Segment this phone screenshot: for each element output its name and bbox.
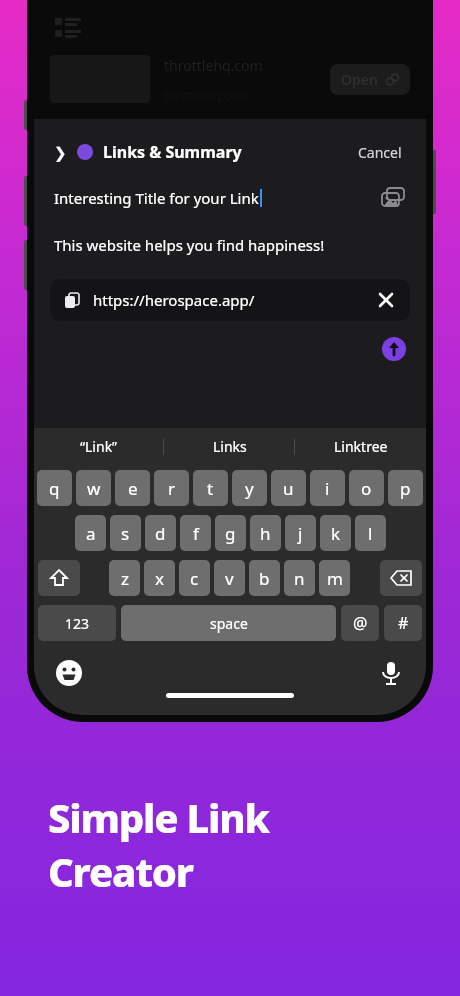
staticText: r: [168, 477, 176, 500]
staticText: m: [327, 567, 343, 590]
staticText: z: [121, 567, 129, 590]
button[interactable]: “Link”: [34, 428, 164, 465]
button[interactable]: q: [37, 470, 72, 506]
staticText: w: [87, 477, 101, 500]
staticText: Interesting Title for your Link: [54, 188, 259, 208]
staticText: l: [368, 522, 373, 545]
button[interactable]: 123: [38, 605, 116, 641]
button[interactable]: Voice input: [378, 660, 404, 686]
staticText: Linktree: [334, 437, 388, 456]
button[interactable]: #: [384, 605, 422, 641]
button[interactable]: c: [179, 560, 210, 596]
staticText: g: [225, 522, 236, 545]
staticText: ❯: [54, 144, 67, 161]
button[interactable]: k: [320, 515, 351, 551]
staticText: o: [361, 477, 372, 500]
staticText: u: [283, 477, 294, 500]
staticText: n: [294, 567, 305, 590]
button[interactable]: f: [180, 515, 211, 551]
staticText: Creator: [48, 844, 193, 898]
button[interactable]: Add image: [380, 185, 406, 211]
staticText: t: [207, 477, 214, 500]
button[interactable]: r: [154, 470, 189, 506]
button[interactable]: t: [193, 470, 228, 506]
button[interactable]: Backspace: [380, 560, 422, 596]
button[interactable]: Clear: [376, 290, 396, 310]
button[interactable]: x: [144, 560, 175, 596]
button[interactable]: j: [285, 515, 316, 551]
button[interactable]: m: [319, 560, 350, 596]
staticText: v: [225, 567, 234, 590]
button[interactable]: w: [76, 470, 111, 506]
staticText: space: [210, 614, 248, 633]
button[interactable]: z: [109, 560, 140, 596]
staticText: https://herospace.app/: [93, 290, 255, 310]
staticText: y: [245, 477, 254, 500]
staticText: @: [353, 612, 368, 634]
staticText: d: [155, 522, 166, 545]
button[interactable]: v: [214, 560, 245, 596]
button[interactable]: h: [250, 515, 281, 551]
staticText: f: [193, 522, 199, 545]
button[interactable]: Emoji: [56, 660, 82, 686]
staticText: throttlehq.com: [164, 56, 263, 75]
button[interactable]: b: [249, 560, 280, 596]
button[interactable]: s: [110, 515, 141, 551]
button[interactable]: Linktree: [295, 428, 426, 465]
button[interactable]: Open: [330, 64, 410, 95]
staticText: a: [86, 522, 96, 545]
button[interactable]: o: [349, 470, 384, 506]
staticText: Open: [341, 70, 378, 89]
staticText: b: [259, 567, 270, 590]
staticText: Simple Link: [48, 790, 269, 844]
button[interactable]: Send: [382, 337, 406, 361]
button[interactable]: y: [232, 470, 267, 506]
staticText: Links & Summary: [103, 141, 242, 163]
button[interactable]: e: [115, 470, 150, 506]
staticText: x: [155, 567, 164, 590]
staticText: Links: [213, 437, 247, 456]
button[interactable]: Menu: [54, 13, 80, 39]
button[interactable]: a: [75, 515, 106, 551]
staticText: p: [400, 477, 411, 500]
staticText: This website helps you find happiness!: [54, 235, 325, 255]
staticText: “Link”: [80, 437, 118, 456]
button[interactable]: p: [388, 470, 423, 506]
button[interactable]: space: [121, 605, 336, 641]
button[interactable]: n: [284, 560, 315, 596]
button[interactable]: i: [310, 470, 345, 506]
button[interactable]: g: [215, 515, 246, 551]
staticText: e: [128, 477, 138, 500]
staticText: j: [298, 522, 303, 545]
button[interactable]: l: [355, 515, 386, 551]
staticText: k: [331, 522, 341, 545]
staticText: 123: [65, 614, 90, 633]
button[interactable]: Cancel: [354, 139, 406, 166]
button[interactable]: https://herospace.app/: [50, 279, 410, 321]
staticText: i: [325, 477, 330, 500]
staticText: h: [260, 522, 271, 545]
staticText: Cancel: [358, 143, 402, 162]
staticText: #: [398, 612, 409, 634]
staticText: c: [190, 567, 199, 590]
button[interactable]: d: [145, 515, 176, 551]
staticText: q: [49, 477, 60, 500]
button[interactable]: u: [271, 470, 306, 506]
button[interactable]: Links: [164, 428, 295, 465]
button[interactable]: Shift: [38, 560, 80, 596]
button[interactable]: @: [341, 605, 379, 641]
staticText: s: [121, 522, 130, 545]
